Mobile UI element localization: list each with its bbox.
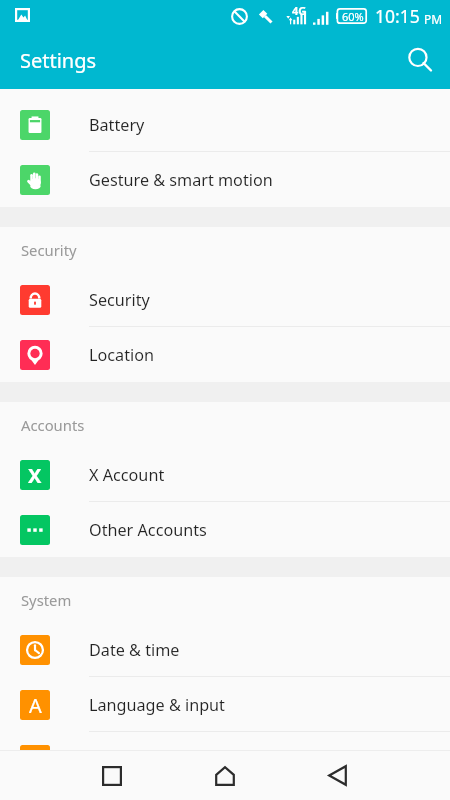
staticText: X Account <box>89 464 165 486</box>
button[interactable]: About phone <box>0 732 450 787</box>
button[interactable]: Search <box>396 36 444 84</box>
staticText: Location <box>89 344 154 366</box>
staticText: A <box>29 692 42 719</box>
staticText: Battery <box>89 114 145 136</box>
staticText: Security <box>89 289 150 311</box>
staticText: 60% <box>342 9 364 24</box>
staticText: System <box>21 590 72 610</box>
button[interactable]: Location <box>0 327 450 382</box>
staticText: 4G <box>292 3 307 18</box>
button[interactable]: Recents <box>55 751 168 800</box>
staticText: X <box>28 462 42 489</box>
staticText: About phone <box>89 749 189 771</box>
staticText: Accounts <box>21 415 85 435</box>
staticText: 10:15 <box>375 4 420 28</box>
button[interactable]: Battery <box>0 97 450 152</box>
button[interactable]: A <box>0 677 450 732</box>
staticText: Settings <box>20 47 97 74</box>
staticText: Date & time <box>89 639 180 661</box>
staticText: Gesture & smart motion <box>89 169 273 191</box>
button[interactable]: Back <box>281 751 394 800</box>
button[interactable]: Home <box>168 751 281 800</box>
staticText: Language & input <box>89 694 225 716</box>
button[interactable]: X <box>0 447 450 502</box>
button[interactable]: Other Accounts <box>0 502 450 557</box>
button[interactable]: Gesture & smart motion <box>0 152 450 207</box>
button[interactable]: Security <box>0 272 450 327</box>
staticText: PM <box>424 11 443 27</box>
staticText: Security <box>21 240 77 260</box>
staticText: Other Accounts <box>89 519 207 541</box>
button[interactable]: Date & time <box>0 622 450 677</box>
